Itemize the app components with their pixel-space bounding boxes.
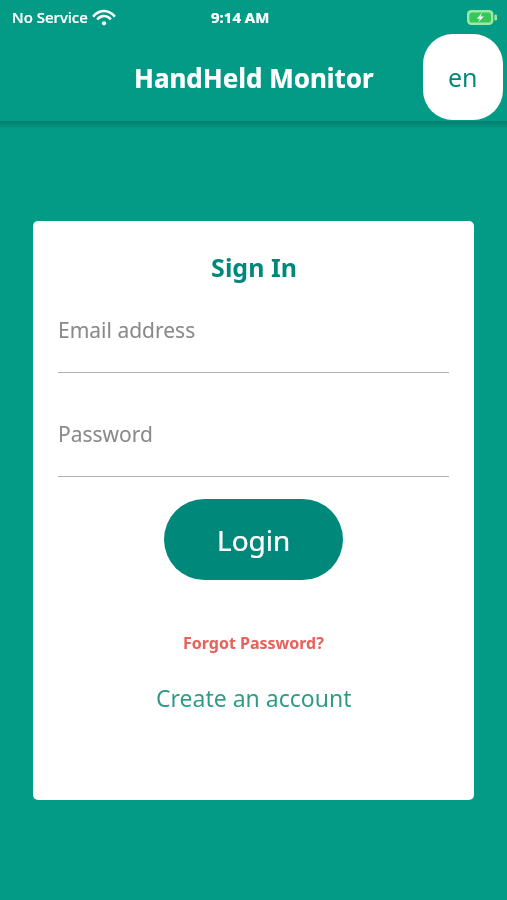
staticText: Login bbox=[217, 521, 291, 559]
staticText: Password bbox=[58, 420, 153, 449]
staticText: Create an account bbox=[156, 682, 352, 713]
button[interactable]: Forgot Password? bbox=[175, 628, 332, 658]
staticText: 9:14 AM bbox=[211, 7, 270, 27]
button[interactable]: Login bbox=[164, 499, 343, 580]
staticText: Email address bbox=[58, 316, 196, 345]
staticText: Sign In bbox=[211, 250, 297, 284]
button[interactable]: Email address bbox=[58, 316, 449, 373]
button[interactable]: Password bbox=[58, 420, 449, 477]
staticText: HandHeld Monitor bbox=[134, 60, 374, 95]
staticText: No Service bbox=[12, 7, 88, 27]
button[interactable]: Create an account bbox=[148, 678, 360, 717]
staticText: Forgot Password? bbox=[183, 632, 324, 654]
button[interactable]: Change language bbox=[423, 34, 503, 120]
staticText: en bbox=[448, 60, 478, 94]
